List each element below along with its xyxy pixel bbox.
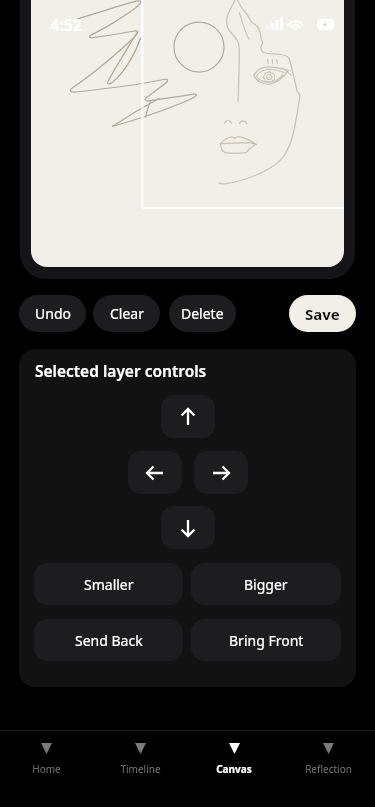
staticText: 4:52 [50, 14, 82, 36]
staticText: Save [305, 304, 340, 324]
staticText: Bring Front [229, 631, 304, 650]
staticText: Bigger [244, 575, 288, 594]
staticText: Timeline [120, 762, 161, 776]
staticText: Undo [35, 304, 71, 323]
button[interactable]: Clear [93, 295, 160, 332]
button[interactable]: Undo [19, 295, 86, 332]
staticText: Reflection [305, 762, 352, 776]
button[interactable]: Bigger [191, 563, 341, 605]
button[interactable]: Delete [169, 295, 236, 332]
button[interactable]: Home [0, 731, 93, 776]
button[interactable]: Move up [161, 395, 215, 438]
button[interactable]: Move left [128, 451, 182, 494]
button[interactable]: Move right [194, 451, 248, 494]
button[interactable]: Send Back [34, 619, 183, 661]
button[interactable]: Smaller [34, 563, 183, 605]
button[interactable]: Timeline [93, 731, 187, 776]
button[interactable]: Canvas [187, 731, 281, 776]
button[interactable]: Bring Front [191, 619, 341, 661]
staticText: Selected layer controls [35, 360, 207, 381]
button[interactable]: Move down [161, 506, 215, 549]
staticText: Smaller [84, 575, 134, 594]
staticText: Home [32, 762, 61, 776]
staticText: Send Back [75, 631, 143, 650]
staticText: Canvas [216, 762, 252, 776]
button[interactable]: Reflection [281, 731, 375, 776]
button[interactable]: Save [289, 295, 356, 332]
staticText: Delete [181, 304, 224, 323]
staticText: Clear [110, 304, 144, 323]
